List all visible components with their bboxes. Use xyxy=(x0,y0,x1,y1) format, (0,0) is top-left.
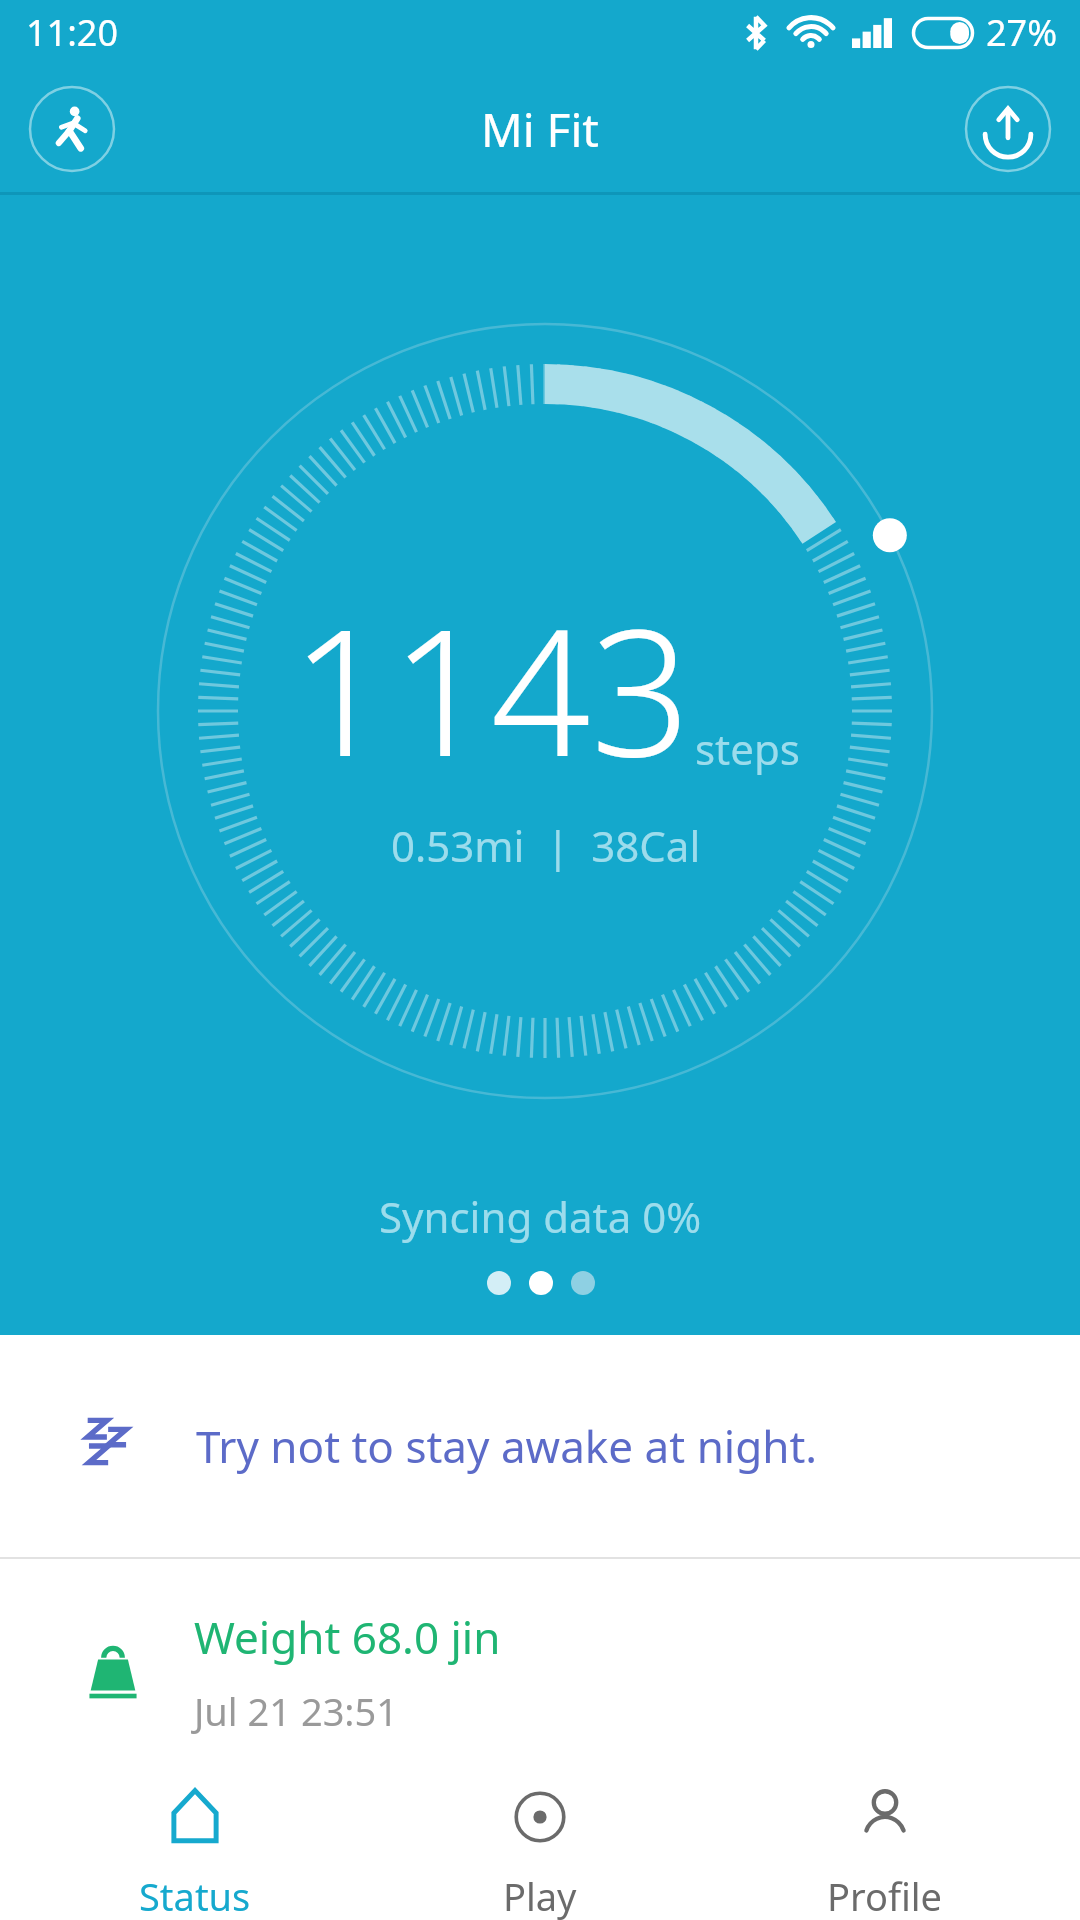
staticText: 0.53mi | 38Cal xyxy=(391,817,701,874)
button[interactable]: Try not to stay awake at night. xyxy=(0,1335,1080,1557)
staticText: Weight 68.0 jin xyxy=(194,1607,501,1667)
staticText: Status xyxy=(139,1870,251,1920)
button[interactable]: Play xyxy=(390,1784,690,1920)
staticText: Try not to stay awake at night. xyxy=(196,1416,818,1476)
staticText: 1143 xyxy=(291,569,691,807)
button[interactable]: Workout xyxy=(28,85,116,173)
staticText: Play xyxy=(503,1870,577,1920)
staticText: 11:20 xyxy=(26,8,119,57)
button[interactable]: Profile xyxy=(735,1784,1035,1920)
staticText: Jul 21 23:51 xyxy=(194,1685,399,1737)
staticText: Mi Fit xyxy=(481,98,599,161)
staticText: Syncing data 0% xyxy=(379,1188,702,1245)
staticText: steps xyxy=(695,720,800,777)
staticText: 27% xyxy=(986,8,1058,57)
button[interactable]: Weight 68.0 jin xyxy=(0,1559,1080,1784)
button[interactable]: Status xyxy=(45,1784,345,1920)
staticText: Profile xyxy=(827,1870,943,1920)
button[interactable]: Sync xyxy=(964,85,1052,173)
